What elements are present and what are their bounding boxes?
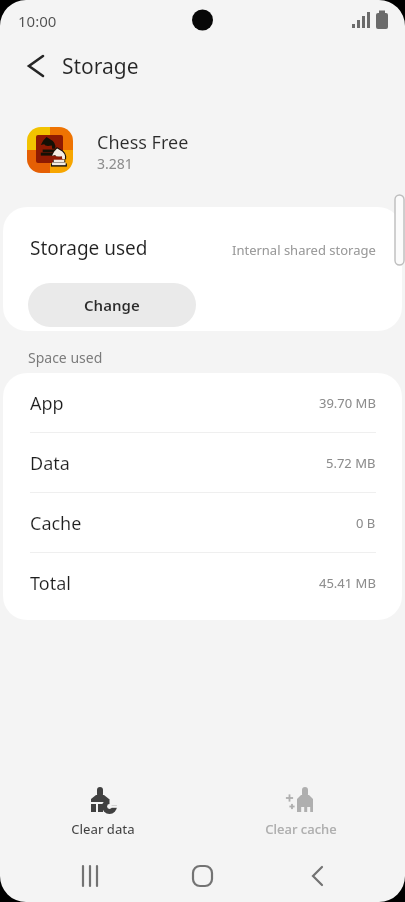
staticText: Clear data <box>43 820 163 838</box>
button[interactable]: Change <box>28 283 196 327</box>
button[interactable]: Cache <box>3 493 402 553</box>
staticText: 5.72 MB <box>326 454 376 472</box>
staticText: Data <box>30 451 70 476</box>
button[interactable]: Clear data <box>43 778 163 842</box>
staticText: Total <box>30 571 71 596</box>
button[interactable]: Total <box>3 553 402 620</box>
button[interactable] <box>299 858 335 894</box>
staticText: Storage <box>62 52 139 81</box>
staticText: 0 B <box>356 514 376 532</box>
staticText: Storage used <box>30 235 148 261</box>
staticText: Cache <box>30 511 82 536</box>
button[interactable] <box>184 858 220 894</box>
staticText: Clear cache <box>241 820 361 838</box>
button[interactable]: Clear cache <box>241 778 361 842</box>
staticText: Internal shared storage <box>232 241 376 259</box>
staticText: Change <box>84 295 140 315</box>
staticText: 45.41 MB <box>319 574 376 592</box>
button[interactable] <box>72 858 108 894</box>
staticText: 39.70 MB <box>319 394 376 412</box>
staticText: App <box>30 391 64 416</box>
button[interactable]: App <box>3 373 402 433</box>
staticText: Space used <box>28 348 103 367</box>
staticText: 3.281 <box>97 154 133 173</box>
button[interactable]: Data <box>3 433 402 493</box>
staticText: 10:00 <box>18 11 57 31</box>
staticText: Chess Free <box>97 130 189 155</box>
button[interactable] <box>18 48 54 84</box>
